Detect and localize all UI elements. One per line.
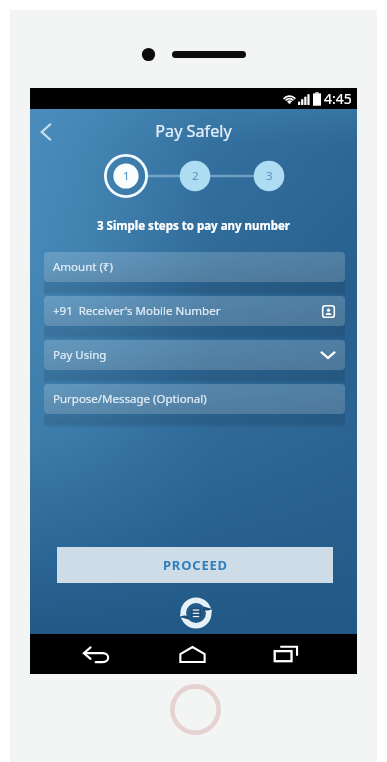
staticText: +91 Receiver's Mobile Number (53, 303, 221, 319)
button[interactable]: Pay Using (44, 340, 345, 370)
staticText: Amount (₹) (53, 259, 113, 275)
staticText: Pay Safely (30, 120, 357, 142)
button[interactable]: +91 Receiver's Mobile Number (44, 296, 345, 326)
staticText: 3 Simple steps to pay any number (30, 218, 357, 234)
button[interactable]: Amount (₹) (44, 252, 345, 282)
button[interactable]: Home (170, 634, 214, 674)
button[interactable]: Recent apps (264, 634, 308, 674)
staticText: 3 (266, 168, 273, 184)
staticText: 2 (192, 168, 199, 184)
button[interactable]: Purpose/Message (Optional) (44, 384, 345, 414)
staticText: Purpose/Message (Optional) (53, 391, 207, 407)
staticText: 1 (123, 168, 130, 184)
button[interactable]: Back (74, 634, 118, 674)
button[interactable]: PROCEED (57, 547, 333, 583)
staticText: PROCEED (163, 556, 228, 574)
staticText: 4:45 (324, 89, 352, 108)
staticText: Pay Using (53, 347, 107, 363)
button[interactable]: Back (30, 116, 62, 147)
button[interactable]: Refresh (178, 595, 214, 631)
